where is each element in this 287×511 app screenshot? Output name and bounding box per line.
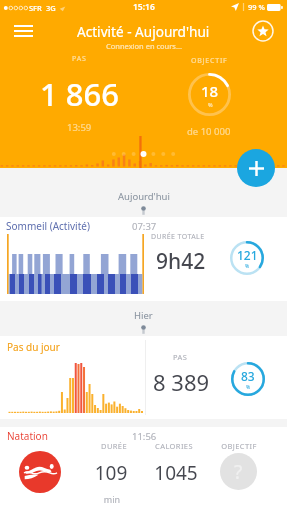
staticText: min (67, 493, 157, 505)
staticText: 109 (66, 460, 156, 486)
staticText: DURÉE TOTALE (151, 232, 205, 242)
staticText: SFR (29, 3, 42, 13)
staticText: 07:37 (132, 220, 157, 233)
staticText: Aujourd'hui (118, 190, 170, 203)
staticText: Hier (134, 309, 153, 322)
button[interactable]: Sommeil (Activité) (0, 217, 287, 301)
staticText: % (245, 263, 250, 270)
staticText: Activité - Aujourd'hui (77, 22, 210, 41)
button[interactable]: Favorite (249, 17, 277, 45)
staticText: 9h42 (156, 247, 206, 276)
staticText: Natation (7, 429, 48, 443)
staticText: 1045 (131, 460, 221, 486)
button[interactable]: Menu (3, 18, 43, 44)
staticText: % (246, 384, 251, 391)
staticText: 13:59 (67, 121, 92, 134)
staticText: 83 (241, 368, 255, 384)
staticText: PAS (72, 54, 87, 64)
staticText: 99 % (248, 2, 265, 12)
staticText: 11:56 (132, 430, 157, 443)
staticText: 121 (237, 247, 258, 263)
staticText: de 10 000 (187, 125, 231, 138)
staticText: OBJECTIF (194, 441, 284, 451)
staticText: PAS (173, 352, 188, 362)
button[interactable]: Pas du jour (0, 336, 287, 419)
staticText: Pas du jour (7, 340, 60, 354)
staticText: 18 (201, 81, 219, 101)
staticText: 3G (46, 3, 56, 13)
staticText: 1 866 (40, 73, 119, 115)
button[interactable]: Add activity (237, 149, 275, 187)
staticText: CALORIES (129, 441, 219, 451)
staticText: OBJECTIF (191, 56, 228, 66)
staticText: Sommeil (Activité) (6, 219, 90, 233)
button[interactable]: Natation (0, 427, 287, 511)
staticText: Connexion en cours... (106, 41, 182, 51)
staticText: % (208, 101, 213, 108)
staticText: ? (234, 459, 243, 485)
staticText: DURÉE (69, 441, 159, 451)
staticText: 8 389 (153, 367, 210, 397)
staticText: 15:16 (133, 1, 155, 13)
